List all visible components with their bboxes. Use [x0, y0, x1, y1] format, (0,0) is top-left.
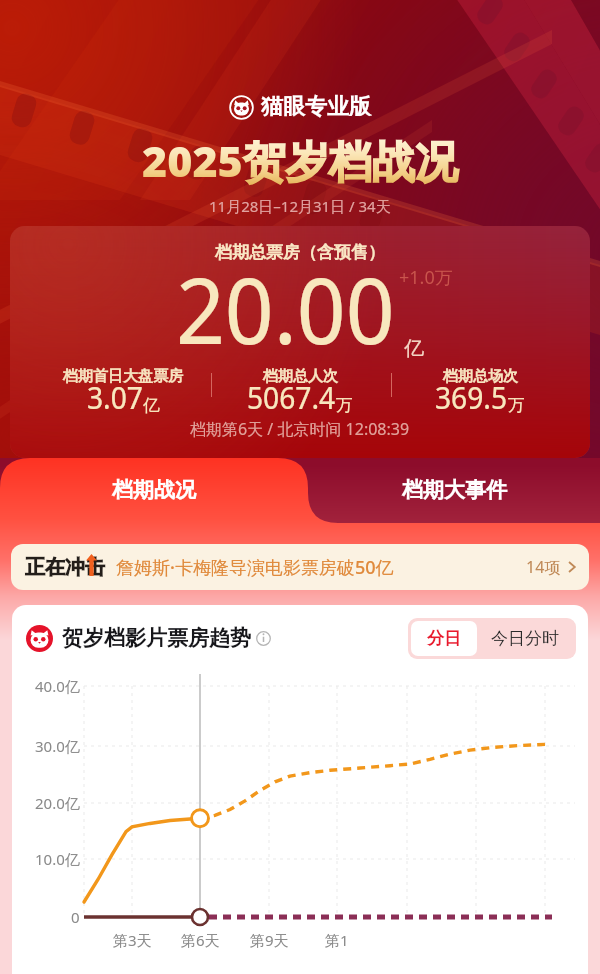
- staticText: 档期战况: [112, 477, 196, 503]
- staticText: 贺岁档影片票房趋势: [62, 625, 251, 651]
- staticText: 今日分时: [491, 628, 559, 649]
- staticText: 第9天: [250, 930, 289, 950]
- button[interactable]: 档期战况: [0, 462, 308, 518]
- staticText: 5067.4: [247, 377, 336, 418]
- staticText: 詹姆斯·卡梅隆导演电影票房破50亿: [116, 555, 394, 580]
- staticText: 14项: [526, 556, 561, 578]
- staticText: 30.0亿: [35, 736, 80, 756]
- staticText: 分日: [427, 628, 461, 649]
- staticText: +1.0万: [399, 265, 453, 290]
- staticText: 档期第6天 / 北京时间 12:08:39: [190, 418, 410, 440]
- staticText: 档期总场次: [443, 367, 518, 386]
- button[interactable]: 档期大事件: [308, 462, 600, 518]
- staticText: 万: [336, 395, 353, 416]
- staticText: 3.07: [87, 377, 143, 418]
- staticText: 2025贺岁档战况: [142, 131, 458, 190]
- button[interactable]: 正在冲击: [11, 544, 589, 590]
- staticText: 40.0亿: [35, 676, 80, 696]
- staticText: 档期首日大盘票房: [63, 367, 183, 386]
- staticText: 20.00: [176, 247, 395, 371]
- staticText: 20.0亿: [35, 793, 80, 813]
- staticText: 11月28日–12月31日 / 34天: [209, 196, 391, 216]
- staticText: 亿: [404, 336, 424, 361]
- staticText: 档期大事件: [402, 477, 507, 503]
- staticText: 第6天: [181, 930, 220, 950]
- other: Info: [256, 631, 271, 646]
- button[interactable]: 分日: [411, 621, 477, 656]
- staticText: 第1: [325, 930, 349, 950]
- staticText: 档期总票房（含预售）: [215, 242, 385, 263]
- staticText: 369.5: [435, 377, 508, 418]
- staticText: 正在冲击: [25, 555, 105, 580]
- staticText: 第3天: [113, 930, 152, 950]
- staticText: 万: [508, 395, 525, 416]
- staticText: 0: [71, 907, 80, 927]
- button[interactable]: 今日分时: [477, 621, 573, 656]
- staticText: 亿: [143, 395, 160, 416]
- staticText: 档期总人次: [263, 367, 338, 386]
- staticText: 10.0亿: [35, 849, 80, 869]
- staticText: 猫眼专业版: [261, 93, 371, 121]
